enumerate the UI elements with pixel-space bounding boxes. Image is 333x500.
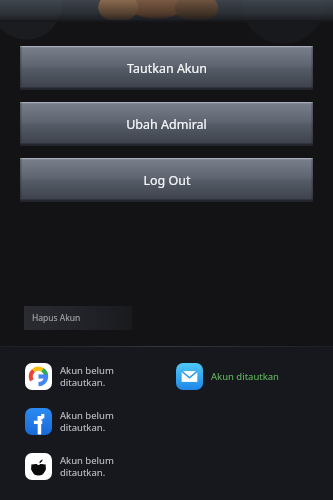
- staticText: Akun belum ditautkan.: [60, 454, 114, 479]
- button[interactable]: Email account linked: [166, 363, 333, 390]
- staticText: Akun belum ditautkan.: [60, 364, 114, 389]
- button[interactable]: Apple account not linked: [0, 453, 166, 480]
- button[interactable]: Hapus Akun: [24, 306, 132, 330]
- staticText: Tautkan Akun: [127, 60, 207, 77]
- staticText: Akun belum ditautkan.: [60, 409, 114, 434]
- button[interactable]: Facebook account not linked: [0, 408, 166, 435]
- button[interactable]: Ubah Admiral: [20, 102, 313, 146]
- staticText: Ubah Admiral: [126, 116, 207, 133]
- staticText: Akun ditautkan: [211, 370, 279, 383]
- staticText: Hapus Akun: [32, 312, 81, 324]
- button[interactable]: Tautkan Akun: [20, 46, 313, 90]
- staticText: Log Out: [143, 172, 191, 189]
- button[interactable]: Google account not linked: [0, 363, 166, 390]
- button[interactable]: Log Out: [20, 158, 313, 202]
